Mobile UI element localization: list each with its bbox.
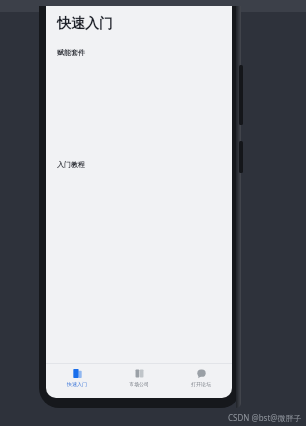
other: 市场公司 <box>134 368 145 379</box>
staticText: CSDN @bst@微胖子 <box>228 412 302 423</box>
staticText: 快速入门 <box>57 15 113 33</box>
staticText: 入门教程 <box>57 160 85 169</box>
button[interactable]: 快速入门 <box>46 364 108 398</box>
other: 快速入门 <box>72 368 83 379</box>
other: 打开论坛 <box>196 368 207 379</box>
button[interactable]: 打开论坛 <box>170 364 232 398</box>
staticText: 市场公司 <box>129 381 149 387</box>
staticText: 快速入门 <box>67 381 87 387</box>
button[interactable]: 赋能套件 <box>46 46 232 59</box>
button[interactable]: 入门教程 <box>46 158 232 171</box>
staticText: 打开论坛 <box>191 381 211 387</box>
button[interactable]: 市场公司 <box>108 364 170 398</box>
staticText: 赋能套件 <box>57 48 85 57</box>
